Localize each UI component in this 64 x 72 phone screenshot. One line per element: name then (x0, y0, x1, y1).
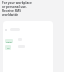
staticText: Hello (6, 40, 12, 43)
staticText: worldwide (2, 13, 19, 17)
staticText: or personal use. (2, 5, 27, 9)
staticText: Hi (7, 46, 10, 49)
button[interactable]: Hello (5, 39, 13, 43)
button[interactable] (5, 28, 53, 31)
button[interactable]: Hi (5, 45, 11, 50)
staticText: Receive SMS (2, 9, 21, 13)
staticText: For your workplace (2, 1, 32, 5)
